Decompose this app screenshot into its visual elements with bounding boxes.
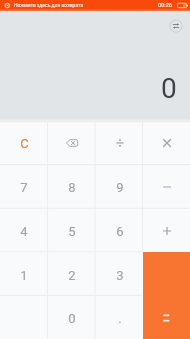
- button[interactable]: 4: [0, 209, 48, 253]
- staticText: 4: [20, 224, 28, 239]
- button[interactable]: 3: [96, 253, 144, 297]
- button[interactable]: 1: [0, 253, 48, 297]
- staticText: 8: [68, 180, 76, 195]
- button[interactable]: 8: [48, 165, 96, 209]
- button[interactable]: 0: [48, 297, 96, 339]
- button[interactable]: 6: [96, 209, 144, 253]
- staticText: 3: [116, 268, 124, 283]
- staticText: 7: [20, 180, 28, 195]
- staticText: 0: [68, 311, 76, 326]
- staticText: 1: [20, 268, 28, 283]
- button[interactable]: [143, 252, 190, 339]
- button[interactable]: 7: [0, 165, 48, 209]
- staticText: 5: [68, 224, 76, 239]
- button[interactable]: 5: [48, 209, 96, 253]
- staticText: 00:26: [158, 2, 172, 9]
- staticText: 9: [116, 180, 124, 195]
- staticText: 2: [68, 268, 76, 283]
- button[interactable]: C: [0, 121, 48, 165]
- button[interactable]: Divide: [96, 121, 144, 165]
- button[interactable]: Backspace: [48, 121, 96, 165]
- button[interactable]: Minus: [144, 165, 190, 209]
- staticText: 6: [116, 224, 124, 239]
- button[interactable]: Plus: [144, 209, 190, 253]
- button[interactable]: 2: [48, 253, 96, 297]
- button[interactable]: 9: [96, 165, 144, 209]
- button[interactable]: Unit converter: [169, 19, 183, 33]
- button[interactable]: Tap here to return to call: [0, 0, 190, 11]
- button[interactable]: Multiply: [144, 121, 190, 165]
- staticText: Нажмите здесь для возврата: [14, 2, 84, 8]
- staticText: C: [20, 136, 29, 151]
- button[interactable]: .: [96, 297, 144, 339]
- staticText: 0: [161, 72, 177, 105]
- staticText: .: [118, 311, 122, 326]
